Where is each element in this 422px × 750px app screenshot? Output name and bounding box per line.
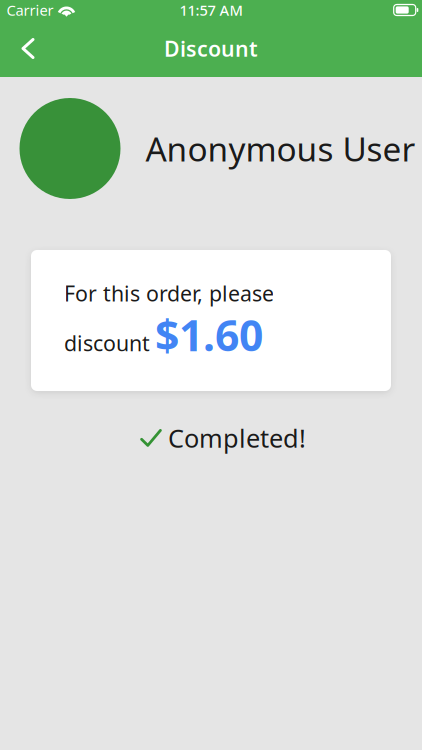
staticText: discount: [64, 329, 150, 357]
staticText: Discount: [164, 34, 258, 63]
staticText: For this order, please: [64, 279, 274, 307]
staticText: Carrier: [6, 0, 53, 20]
staticText: $1.60: [155, 306, 263, 363]
button[interactable]: Back: [0, 25, 50, 72]
staticText: Completed!: [168, 421, 306, 455]
staticText: 11:57 AM: [179, 0, 242, 20]
staticText: Anonymous User: [145, 126, 415, 171]
